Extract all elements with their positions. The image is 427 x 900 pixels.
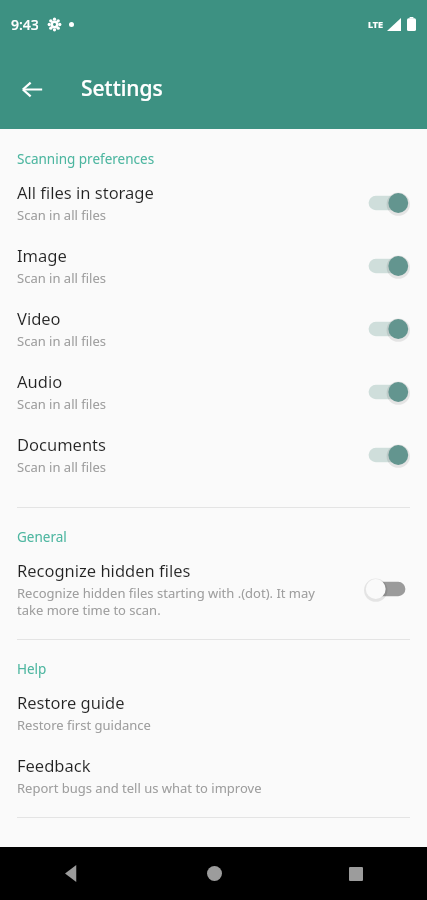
staticText: Settings	[81, 74, 163, 103]
staticText: LTE	[368, 18, 384, 30]
staticText: Report bugs and tell us what to improve	[17, 779, 262, 797]
button[interactable]: Audio	[0, 357, 427, 420]
button[interactable]: Toggle on	[364, 377, 410, 407]
button[interactable]: Video	[0, 294, 427, 357]
button[interactable]: Back	[0, 847, 143, 900]
button[interactable]: Image	[0, 231, 427, 294]
staticText: Scanning preferences	[17, 150, 155, 168]
staticText: Scan in all files	[17, 458, 106, 476]
staticText: Scan in all files	[17, 395, 106, 413]
button[interactable]: Toggle off	[364, 574, 410, 604]
button[interactable]: Toggle on	[364, 314, 410, 344]
staticText: Scan in all files	[17, 332, 106, 350]
staticText: Restore first guidance	[17, 716, 151, 734]
button[interactable]: Back	[10, 67, 54, 111]
button[interactable]: Recent apps	[285, 847, 427, 900]
staticText: Help	[17, 660, 47, 678]
button[interactable]: Home	[143, 847, 285, 900]
staticText: Documents	[17, 433, 106, 455]
button[interactable]: Recognize hidden files	[0, 546, 427, 625]
button[interactable]: Toggle on	[364, 251, 410, 281]
staticText: Feedback	[17, 754, 91, 776]
staticText: General	[17, 528, 67, 546]
staticText: Image	[17, 244, 67, 266]
staticText: Scan in all files	[17, 269, 106, 287]
staticText: Recognize hidden files	[17, 559, 191, 581]
button[interactable]: Restore guide	[0, 678, 427, 741]
staticText: Restore guide	[17, 691, 125, 713]
button[interactable]: Documents	[0, 420, 427, 483]
staticText: Audio	[17, 370, 63, 392]
staticText: Scan in all files	[17, 206, 106, 224]
button[interactable]: Toggle on	[364, 188, 410, 218]
staticText: Recognize hidden files starting with .(d…	[17, 584, 315, 619]
button[interactable]: All files in storage	[0, 168, 427, 231]
button[interactable]: Toggle on	[364, 440, 410, 470]
staticText: All files in storage	[17, 181, 154, 203]
button[interactable]: Feedback	[0, 741, 427, 804]
staticText: Video	[17, 307, 61, 329]
staticText: 9:43	[11, 15, 39, 34]
